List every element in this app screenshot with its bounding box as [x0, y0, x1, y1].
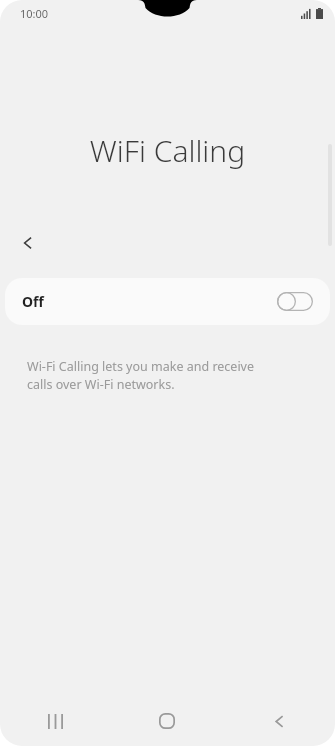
button[interactable]: Home [111, 696, 223, 746]
staticText: 10:00 [20, 6, 49, 21]
button[interactable]: Off [5, 278, 330, 325]
staticText: Wi-Fi Calling lets you make and receive … [27, 358, 255, 393]
staticText: WiFi Calling [0, 130, 335, 171]
button[interactable]: Back [8, 223, 48, 263]
button[interactable]: Back [223, 696, 335, 746]
button[interactable]: Recent apps [0, 696, 111, 746]
staticText: Off [22, 292, 44, 311]
